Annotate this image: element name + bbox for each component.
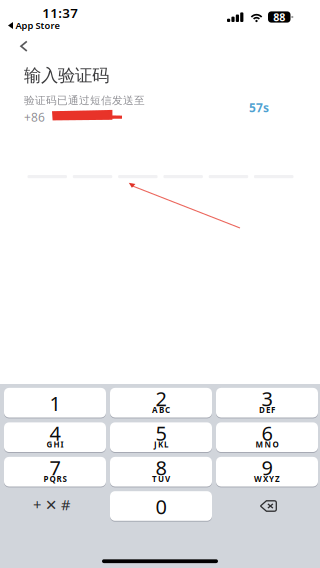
staticText: 7	[49, 454, 60, 481]
button[interactable]: 57s	[242, 100, 276, 114]
staticText: 9	[261, 454, 272, 481]
staticText: 11:37	[42, 4, 78, 22]
staticText: 5	[155, 420, 166, 446]
staticText: W X Y Z	[254, 474, 280, 484]
staticText: M N O	[255, 439, 278, 450]
staticText: D E F	[259, 405, 275, 415]
staticText: 8	[155, 454, 166, 481]
staticText: 2	[155, 385, 166, 412]
button[interactable]: 5	[110, 422, 212, 453]
button[interactable]: Back	[0, 26, 48, 66]
staticText: P Q R S	[43, 474, 66, 484]
staticText: App Store	[15, 19, 59, 32]
button[interactable]: 2	[110, 388, 212, 419]
button[interactable]: 0	[110, 491, 212, 522]
staticText: T U V	[152, 474, 170, 484]
staticText: +86	[24, 109, 45, 125]
button[interactable]: 9	[216, 457, 318, 488]
button[interactable]: 1	[4, 388, 106, 419]
staticText: + ✕ #	[33, 495, 70, 514]
button[interactable]: Delete	[216, 491, 318, 521]
staticText: 4	[49, 420, 60, 446]
button[interactable]: + ✕ #	[4, 491, 106, 521]
staticText: G H I	[46, 439, 63, 450]
staticText: J K L	[154, 439, 168, 450]
staticText: 验证码已通过短信发送至	[24, 94, 145, 107]
button[interactable]: 6	[216, 422, 318, 453]
button[interactable]: 8	[110, 457, 212, 488]
staticText: 0	[155, 493, 166, 520]
button[interactable]: 7	[4, 457, 106, 488]
staticText: 88	[273, 10, 285, 24]
staticText: 1	[49, 390, 60, 417]
staticText: 输入验证码	[24, 65, 109, 86]
staticText: A B C	[152, 405, 170, 415]
staticText: 57s	[249, 99, 269, 115]
staticText: 6	[261, 420, 272, 446]
button[interactable]: 4	[4, 422, 106, 453]
button[interactable]: 3	[216, 388, 318, 419]
staticText: 3	[261, 385, 272, 412]
